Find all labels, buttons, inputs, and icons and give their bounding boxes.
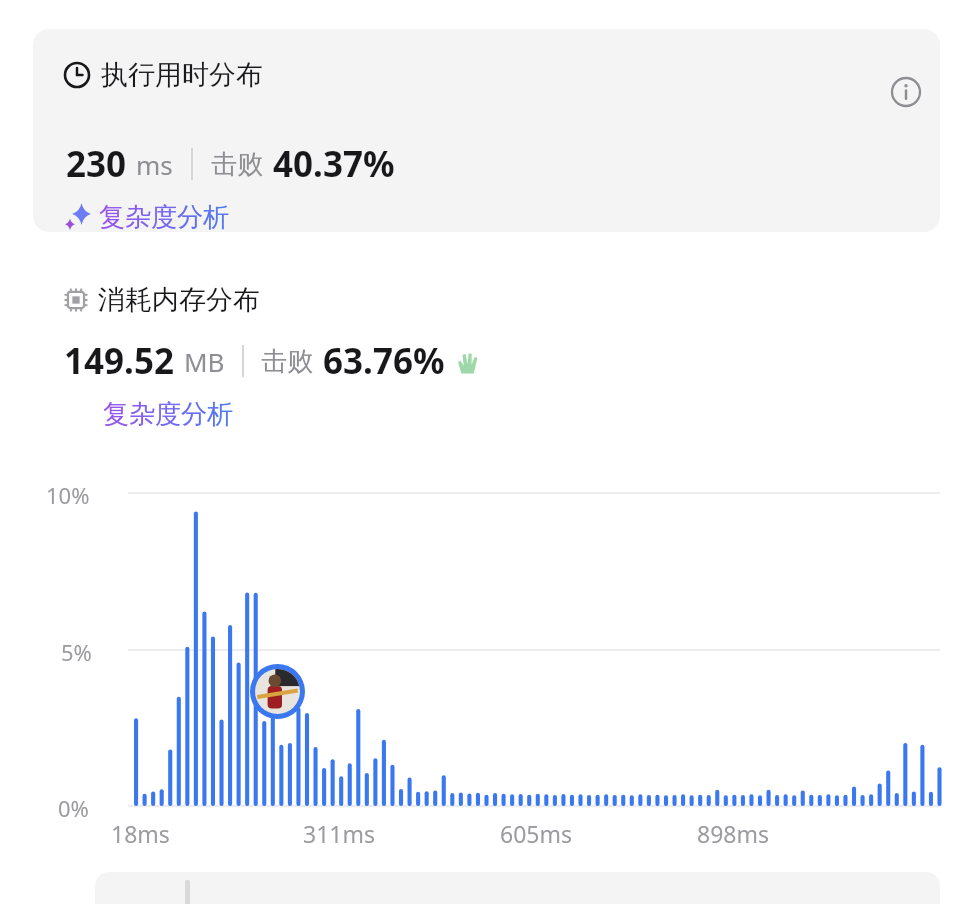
staticText: 18ms (111, 818, 170, 849)
button[interactable]: 复杂度分析 (103, 398, 233, 431)
button[interactable]: 执行用时分布 (33, 29, 940, 232)
staticText: 击败 (211, 148, 263, 181)
staticText: 10% (46, 480, 90, 510)
staticText: 复杂度分析 (103, 398, 233, 431)
staticText: 0% (58, 793, 89, 823)
staticText: MB (184, 344, 225, 379)
staticText: 5% (61, 637, 92, 667)
staticText: ms (136, 147, 173, 182)
staticText: 执行用时分布 (101, 58, 263, 92)
button[interactable]: Info (886, 72, 926, 112)
staticText: 复杂度分析 (99, 201, 229, 232)
button[interactable]: 复杂度分析 (61, 199, 229, 232)
staticText: 311ms (303, 818, 375, 849)
staticText: 消耗内存分布 (98, 283, 260, 317)
button[interactable]: User avatar (250, 664, 305, 719)
staticText: 击败 (261, 345, 313, 378)
staticText: 898ms (697, 818, 769, 849)
staticText: 230 (66, 140, 127, 188)
staticText: 605ms (500, 818, 572, 849)
staticText: 40.37% (273, 140, 395, 188)
staticText: 63.76% (323, 337, 445, 385)
staticText: 149.52 (64, 337, 174, 385)
